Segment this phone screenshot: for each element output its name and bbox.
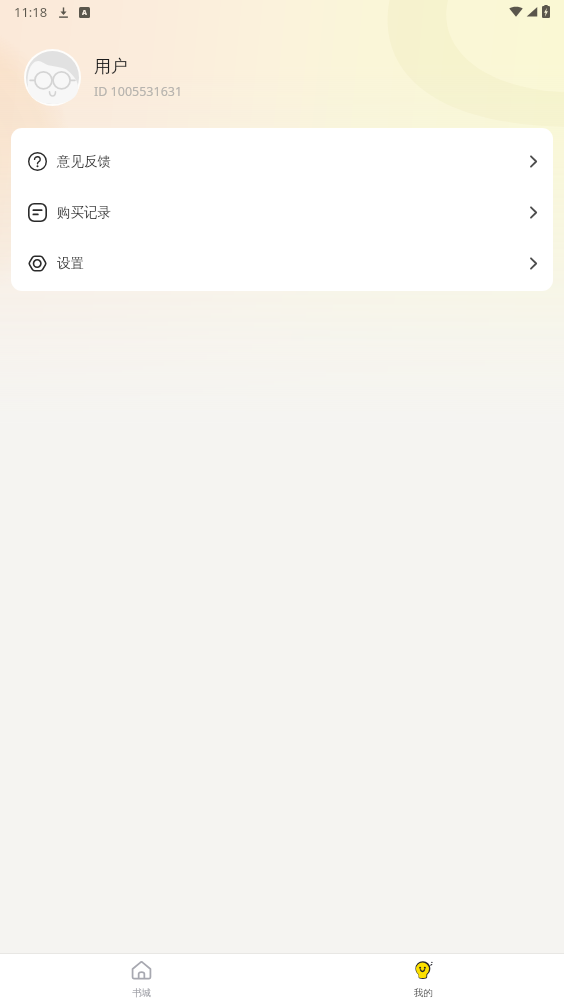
- button[interactable]: Profile: [0, 49, 564, 106]
- staticText: 设置: [57, 255, 84, 272]
- staticText: 用户: [94, 56, 128, 77]
- staticText: 11:18: [14, 3, 48, 21]
- staticText: 购买记录: [57, 204, 111, 221]
- button[interactable]: Purchase history: [11, 187, 553, 238]
- staticText: 意见反馈: [57, 153, 111, 170]
- button[interactable]: 我的: [282, 954, 564, 1004]
- staticText: ID 1005531631: [94, 83, 183, 100]
- button[interactable]: Settings: [11, 238, 553, 289]
- staticText: 书城: [132, 987, 151, 999]
- staticText: A: [82, 8, 87, 18]
- button[interactable]: 书城: [0, 954, 282, 1004]
- button[interactable]: Feedback: [11, 136, 553, 187]
- staticText: 我的: [414, 987, 433, 999]
